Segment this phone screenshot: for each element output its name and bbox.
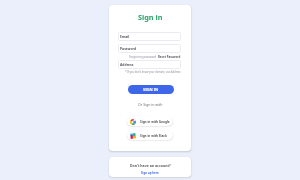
- button[interactable]: Sign up here: [141, 171, 159, 175]
- button[interactable]: SIGN IN: [128, 85, 174, 94]
- staticText: Email: [120, 34, 130, 39]
- button[interactable]: Reset Password: [158, 55, 181, 59]
- button[interactable]: Email: [118, 32, 181, 41]
- staticText: Password: [120, 46, 137, 51]
- staticText: Sign in with Slack: [140, 134, 167, 138]
- button[interactable]: Address: [118, 60, 181, 69]
- button[interactable]: Sign in with Google: [127, 117, 173, 126]
- staticText: Sign in with Google: [140, 120, 170, 124]
- staticText: Or Sign in with: [138, 102, 163, 107]
- staticText: SIGN IN: [143, 87, 159, 92]
- staticText: Sign in: [138, 12, 163, 22]
- staticText: * If you don't know your domain, use Add…: [125, 70, 181, 74]
- staticText: Don't have an account?: [130, 163, 171, 168]
- button[interactable]: Sign in with Slack: [127, 131, 173, 140]
- staticText: Forgot my password: [129, 55, 157, 59]
- button[interactable]: Password: [118, 44, 181, 53]
- staticText: Address: [120, 62, 134, 67]
